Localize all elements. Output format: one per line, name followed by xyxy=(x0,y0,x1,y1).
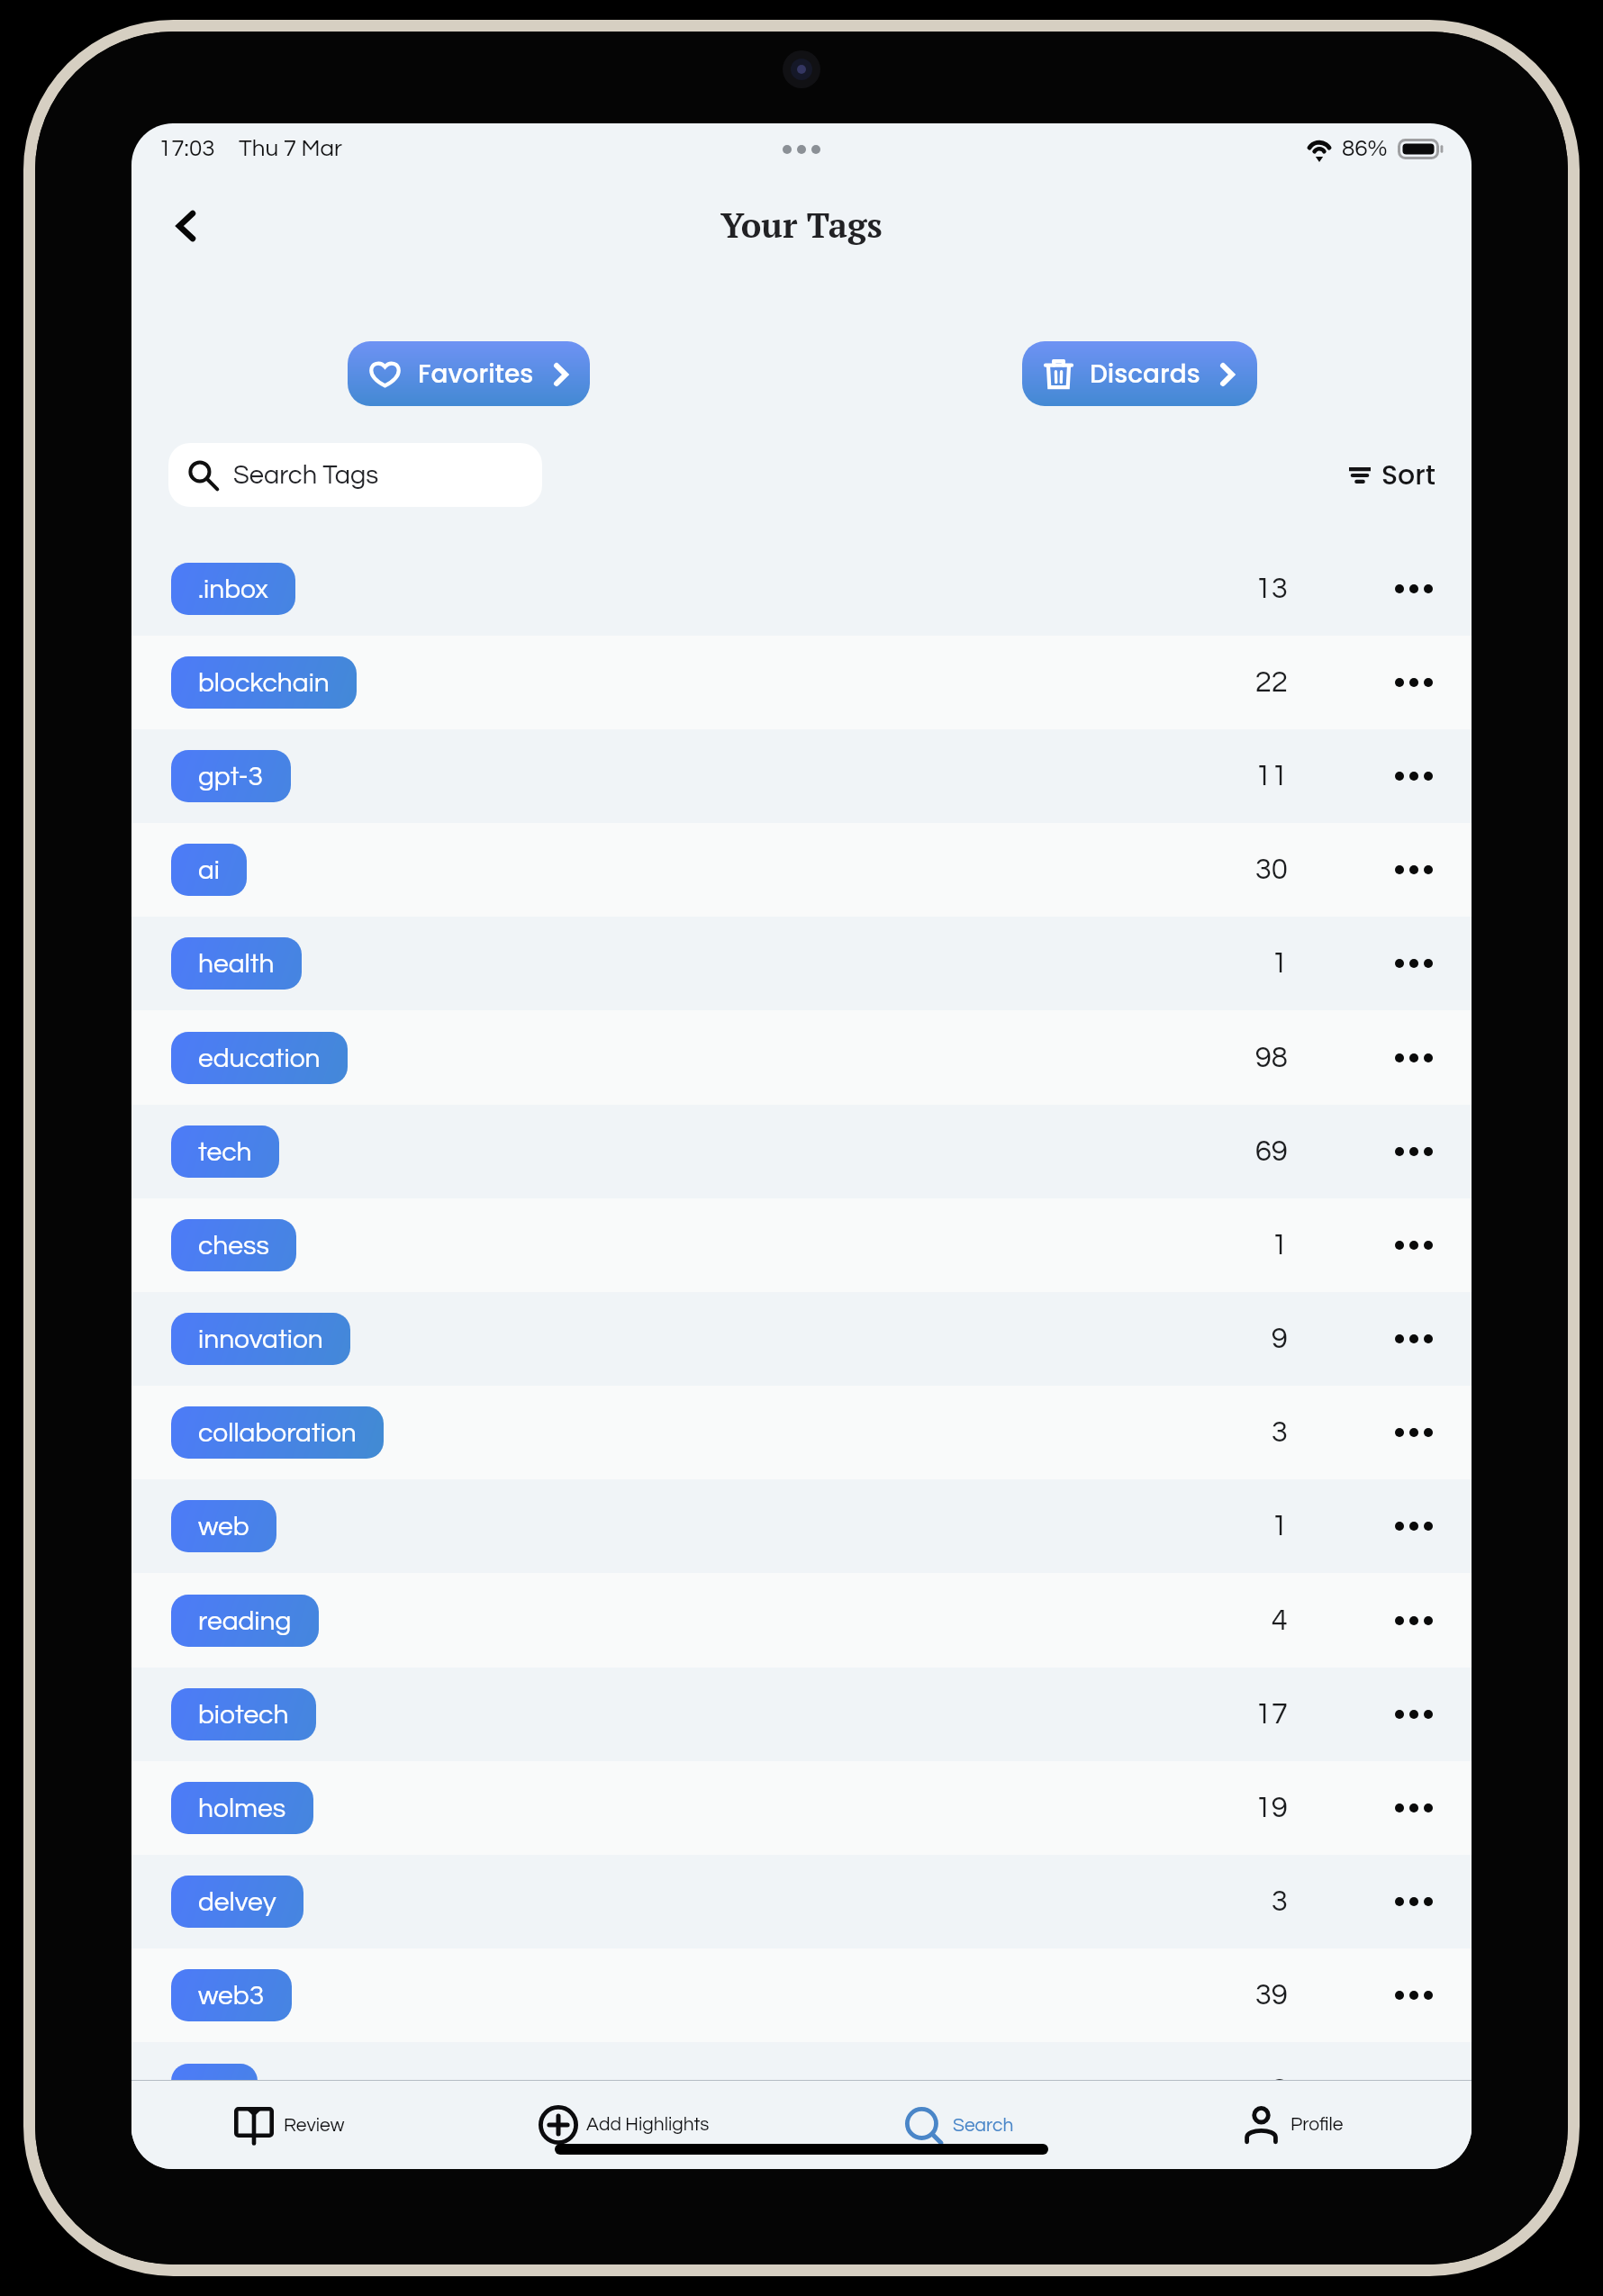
button[interactable]: education xyxy=(131,1010,1472,1105)
button[interactable]: tech xyxy=(131,1105,1472,1198)
staticText: nft xyxy=(198,2076,231,2104)
staticText: .inbox xyxy=(198,575,268,603)
button[interactable]: More options xyxy=(1381,1029,1447,1087)
staticText: chess xyxy=(198,1232,269,1260)
button[interactable]: Sort xyxy=(1349,456,1435,494)
staticText: Discards xyxy=(1090,357,1200,392)
button[interactable]: More options xyxy=(1381,841,1447,899)
staticText: blockchain xyxy=(198,669,330,697)
staticText: 69 xyxy=(1254,1136,1288,1167)
button[interactable]: web xyxy=(131,1479,1472,1573)
button[interactable]: holmes xyxy=(131,1761,1472,1855)
staticText: 11 xyxy=(1254,761,1288,791)
staticText: 3 xyxy=(1271,1417,1288,1448)
staticText: 4 xyxy=(1271,1605,1288,1636)
staticText: health xyxy=(198,950,275,978)
button[interactable]: blockchain xyxy=(131,636,1472,729)
staticText: Search Tags xyxy=(233,462,379,489)
button[interactable]: gpt-3 xyxy=(131,729,1472,823)
staticText: gpt-3 xyxy=(198,763,264,791)
button[interactable]: Search Tags xyxy=(168,443,542,507)
staticText: web3 xyxy=(198,1982,265,2010)
staticText: delvey xyxy=(198,1888,276,1916)
button[interactable]: web3 xyxy=(131,1948,1472,2042)
button[interactable]: More options xyxy=(1381,1779,1447,1837)
button[interactable]: chess xyxy=(131,1198,1472,1292)
button[interactable]: More options xyxy=(1381,1966,1447,2024)
staticText: 17 xyxy=(1254,1699,1288,1730)
button[interactable]: delvey xyxy=(131,1855,1472,1948)
staticText: 86% xyxy=(1342,137,1388,161)
button[interactable]: Profile xyxy=(1127,2081,1462,2169)
button[interactable]: collaboration xyxy=(131,1386,1472,1479)
staticText: Thu 7 Mar xyxy=(239,137,342,161)
staticText: ai xyxy=(198,856,220,884)
button[interactable]: More options xyxy=(1381,1873,1447,1930)
button[interactable]: Back xyxy=(149,190,222,262)
button[interactable]: Review xyxy=(131,2081,457,2169)
staticText: 19 xyxy=(1254,1793,1288,1823)
staticText: Sort xyxy=(1381,456,1435,494)
button[interactable]: Favorites xyxy=(348,341,590,406)
staticText: education xyxy=(198,1044,321,1072)
staticText: web xyxy=(198,1513,249,1541)
staticText: 39 xyxy=(1254,1980,1288,2011)
staticText: 1 xyxy=(1271,1230,1288,1261)
staticText: Review xyxy=(284,2116,345,2136)
button[interactable]: innovation xyxy=(131,1292,1472,1386)
staticText: 98 xyxy=(1254,1043,1288,1073)
button[interactable]: nft xyxy=(131,2042,1472,2137)
button[interactable]: More options xyxy=(1381,1123,1447,1180)
button[interactable]: health xyxy=(131,917,1472,1010)
button[interactable]: Search xyxy=(792,2081,1127,2169)
button[interactable]: More options xyxy=(1381,1216,1447,1274)
staticText: Search xyxy=(953,2116,1014,2136)
button[interactable]: Add Highlights xyxy=(457,2081,792,2169)
staticText: 13 xyxy=(1254,574,1288,604)
staticText: 30 xyxy=(1254,854,1288,885)
staticText: collaboration xyxy=(198,1419,357,1447)
button[interactable]: More options xyxy=(1381,1310,1447,1368)
staticText: 17:03 xyxy=(158,137,215,161)
button[interactable]: More options xyxy=(1381,2061,1447,2119)
button[interactable]: Discards xyxy=(1022,341,1257,406)
staticText: innovation xyxy=(198,1325,323,1353)
staticText: 1 xyxy=(1271,948,1288,979)
staticText: Favorites xyxy=(418,357,534,392)
staticText: Add Highlights xyxy=(586,2115,710,2135)
staticText: biotech xyxy=(198,1701,289,1729)
staticText: holmes xyxy=(198,1794,286,1822)
staticText: 1 xyxy=(1271,1511,1288,1541)
staticText: tech xyxy=(198,1138,252,1166)
staticText: Your Tags xyxy=(720,203,883,248)
button[interactable]: More options xyxy=(1381,1404,1447,1461)
button[interactable]: More options xyxy=(1381,1497,1447,1555)
button[interactable]: ai xyxy=(131,823,1472,917)
button[interactable]: reading xyxy=(131,1573,1472,1668)
button[interactable]: More options xyxy=(1381,654,1447,711)
staticText: 9 xyxy=(1271,1324,1288,1354)
button[interactable]: More options xyxy=(1381,560,1447,618)
button[interactable]: More options xyxy=(1381,935,1447,992)
staticText: reading xyxy=(198,1607,292,1635)
button[interactable]: More options xyxy=(1381,1686,1447,1743)
staticText: 3 xyxy=(1271,1886,1288,1917)
button[interactable]: More options xyxy=(1381,1592,1447,1650)
button[interactable]: More options xyxy=(1381,747,1447,805)
staticText: 22 xyxy=(1254,667,1288,698)
staticText: Profile xyxy=(1291,2115,1344,2135)
button[interactable]: biotech xyxy=(131,1668,1472,1761)
staticText: 8 xyxy=(1271,2075,1288,2105)
button[interactable]: .inbox xyxy=(131,542,1472,636)
